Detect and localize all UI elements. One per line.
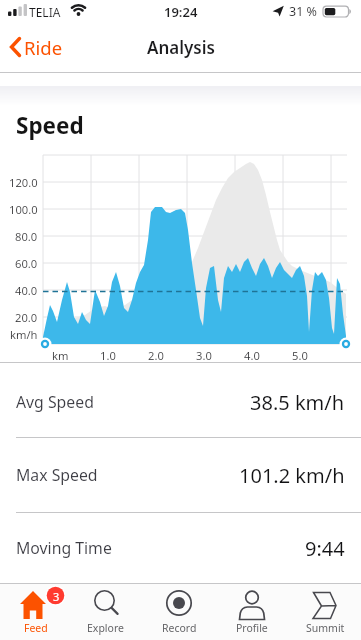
staticText: 100.0: [9, 202, 38, 216]
button[interactable]: [217, 584, 289, 640]
staticText: 20.0: [15, 310, 38, 324]
button[interactable]: Ride: [2, 30, 78, 64]
staticText: 80.0: [15, 229, 38, 243]
button[interactable]: [72, 584, 144, 640]
staticText: 38.5 km/h: [250, 389, 345, 416]
staticText: 1.0: [100, 348, 116, 362]
button[interactable]: [289, 584, 361, 640]
staticText: Analysis: [147, 36, 215, 59]
staticText: 5.0: [292, 348, 308, 362]
staticText: 40.0: [15, 283, 38, 297]
staticText: km: [52, 348, 69, 362]
staticText: 101.2 km/h: [239, 462, 345, 489]
staticText: Ride: [24, 35, 63, 60]
staticText: Summit: [306, 621, 345, 635]
staticText: Max Speed: [16, 464, 98, 486]
staticText: 3.0: [196, 348, 212, 362]
button[interactable]: Moving Time: [16, 530, 345, 566]
button[interactable]: Max Speed: [16, 457, 345, 493]
staticText: Feed: [24, 621, 48, 635]
button[interactable]: [0, 584, 72, 640]
staticText: 4.0: [244, 348, 260, 362]
staticText: 60.0: [15, 256, 38, 270]
staticText: 9:44: [305, 535, 345, 562]
staticText: 31 %: [289, 3, 317, 20]
staticText: Moving Time: [16, 537, 112, 559]
staticText: Record: [162, 621, 197, 635]
button[interactable]: [144, 584, 216, 640]
staticText: 120.0: [9, 175, 38, 189]
staticText: 19:24: [164, 3, 198, 20]
staticText: TELIA: [29, 4, 61, 20]
staticText: km/h: [10, 327, 38, 341]
staticText: Profile: [236, 621, 268, 635]
staticText: 2.0: [148, 348, 164, 362]
button[interactable]: Avg Speed: [16, 384, 345, 420]
staticText: Avg Speed: [16, 391, 94, 413]
staticText: Speed: [16, 110, 84, 141]
staticText: 3: [53, 589, 60, 604]
staticText: Explore: [87, 621, 124, 635]
